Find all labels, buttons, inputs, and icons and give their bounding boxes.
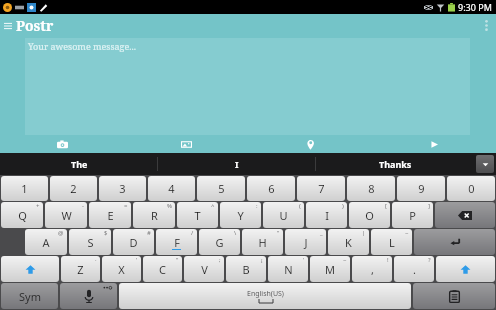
staticText: · [95, 256, 97, 264]
button[interactable]: Navigation drawer [0, 18, 16, 34]
button[interactable]: L [371, 229, 412, 255]
button[interactable]: The [0, 153, 158, 175]
button[interactable]: 9 [397, 176, 445, 201]
staticText: + [36, 202, 40, 210]
button[interactable]: Z [61, 256, 100, 282]
staticText: ! [387, 256, 389, 264]
staticText: X [118, 262, 125, 277]
button[interactable]: D [113, 229, 154, 255]
staticText: Thanks [379, 158, 412, 170]
staticText: \ [234, 229, 237, 237]
button[interactable]: G [199, 229, 240, 255]
button[interactable]: Thanks [316, 153, 474, 175]
staticText: 1 [21, 181, 28, 196]
staticText: ^ [211, 202, 215, 210]
button[interactable]: N [268, 256, 308, 282]
staticText: D [129, 235, 138, 250]
button[interactable]: Attach image [124, 135, 248, 153]
button[interactable]: B [226, 256, 266, 282]
button[interactable]: Location [248, 135, 372, 153]
staticText: ) [342, 202, 344, 210]
staticText: ] [428, 202, 430, 210]
button[interactable]: 0 [447, 176, 495, 201]
staticText: ~ [405, 229, 409, 237]
button[interactable]: W [45, 202, 87, 228]
staticText: ' [303, 256, 305, 264]
button[interactable]: 4 [148, 176, 195, 201]
staticText: , [371, 262, 374, 277]
other: Clipboard [449, 290, 460, 303]
staticText: Z [77, 262, 84, 277]
button[interactable]: More options [476, 14, 496, 36]
button[interactable]: M [310, 256, 350, 282]
button[interactable]: Clipboard [413, 283, 495, 309]
button[interactable]: C [143, 256, 182, 282]
staticText: English(US) [247, 289, 284, 299]
staticText: # [147, 229, 151, 237]
button[interactable]: . [394, 256, 434, 282]
staticText: N [284, 262, 293, 277]
button[interactable]: K [328, 229, 369, 255]
staticText: 0 [468, 181, 475, 196]
staticText: ; [219, 256, 221, 264]
staticText: I [325, 208, 329, 223]
staticText: B [242, 262, 250, 277]
button[interactable]: Backspace [435, 202, 495, 228]
button[interactable]: P [392, 202, 433, 228]
button[interactable]: H [242, 229, 283, 255]
button[interactable]: , [352, 256, 392, 282]
button[interactable]: Send [372, 135, 496, 153]
button[interactable]: A [25, 229, 67, 255]
staticText: 6 [268, 181, 275, 196]
staticText: _ [320, 229, 323, 237]
button[interactable]: Voice input [60, 283, 117, 309]
button[interactable]: 5 [197, 176, 245, 201]
button[interactable]: 6 [247, 176, 295, 201]
staticText: G [215, 235, 224, 250]
staticText: O [365, 208, 374, 223]
button[interactable]: Shift [1, 256, 59, 282]
button[interactable]: T [177, 202, 218, 228]
staticText: " [277, 229, 280, 237]
staticText: 5 [218, 181, 225, 196]
button[interactable]: I [158, 153, 316, 175]
button[interactable]: Sym [1, 283, 58, 309]
button[interactable]: Enter [414, 229, 495, 255]
button[interactable]: Your awesome message... [25, 38, 470, 135]
button[interactable]: English(US) [119, 283, 411, 309]
staticText: = [124, 202, 128, 210]
staticText: 3 [119, 181, 126, 196]
button[interactable]: Y [220, 202, 261, 228]
button[interactable]: Shift [436, 256, 495, 282]
button[interactable]: Q [1, 202, 43, 228]
button[interactable]: Expand suggestions [476, 155, 494, 173]
staticText: 9 [418, 181, 425, 196]
button[interactable]: Camera [0, 135, 124, 153]
staticText: T [194, 208, 201, 223]
staticText: ( [299, 202, 301, 210]
other: Shift [460, 264, 471, 275]
staticText: Your awesome message... [28, 40, 136, 52]
button[interactable]: 1 [1, 176, 48, 201]
button[interactable]: 3 [99, 176, 146, 201]
button[interactable]: O [349, 202, 390, 228]
other: Enter [449, 236, 461, 248]
button[interactable]: 8 [347, 176, 395, 201]
staticText: ¡ [261, 256, 263, 264]
staticText: 7 [318, 181, 325, 196]
button[interactable]: S [69, 229, 111, 255]
staticText: U [279, 208, 288, 223]
button[interactable]: V [184, 256, 224, 282]
button[interactable]: 2 [50, 176, 97, 201]
button[interactable]: U [263, 202, 304, 228]
button[interactable]: F [156, 229, 197, 255]
staticText: H [258, 235, 267, 250]
button[interactable]: 7 [297, 176, 345, 201]
button[interactable]: J [285, 229, 326, 255]
button[interactable]: I [306, 202, 347, 228]
button[interactable]: E [89, 202, 131, 228]
staticText: W [61, 208, 72, 223]
staticText: . [413, 262, 416, 277]
button[interactable]: R [133, 202, 175, 228]
button[interactable]: X [102, 256, 141, 282]
